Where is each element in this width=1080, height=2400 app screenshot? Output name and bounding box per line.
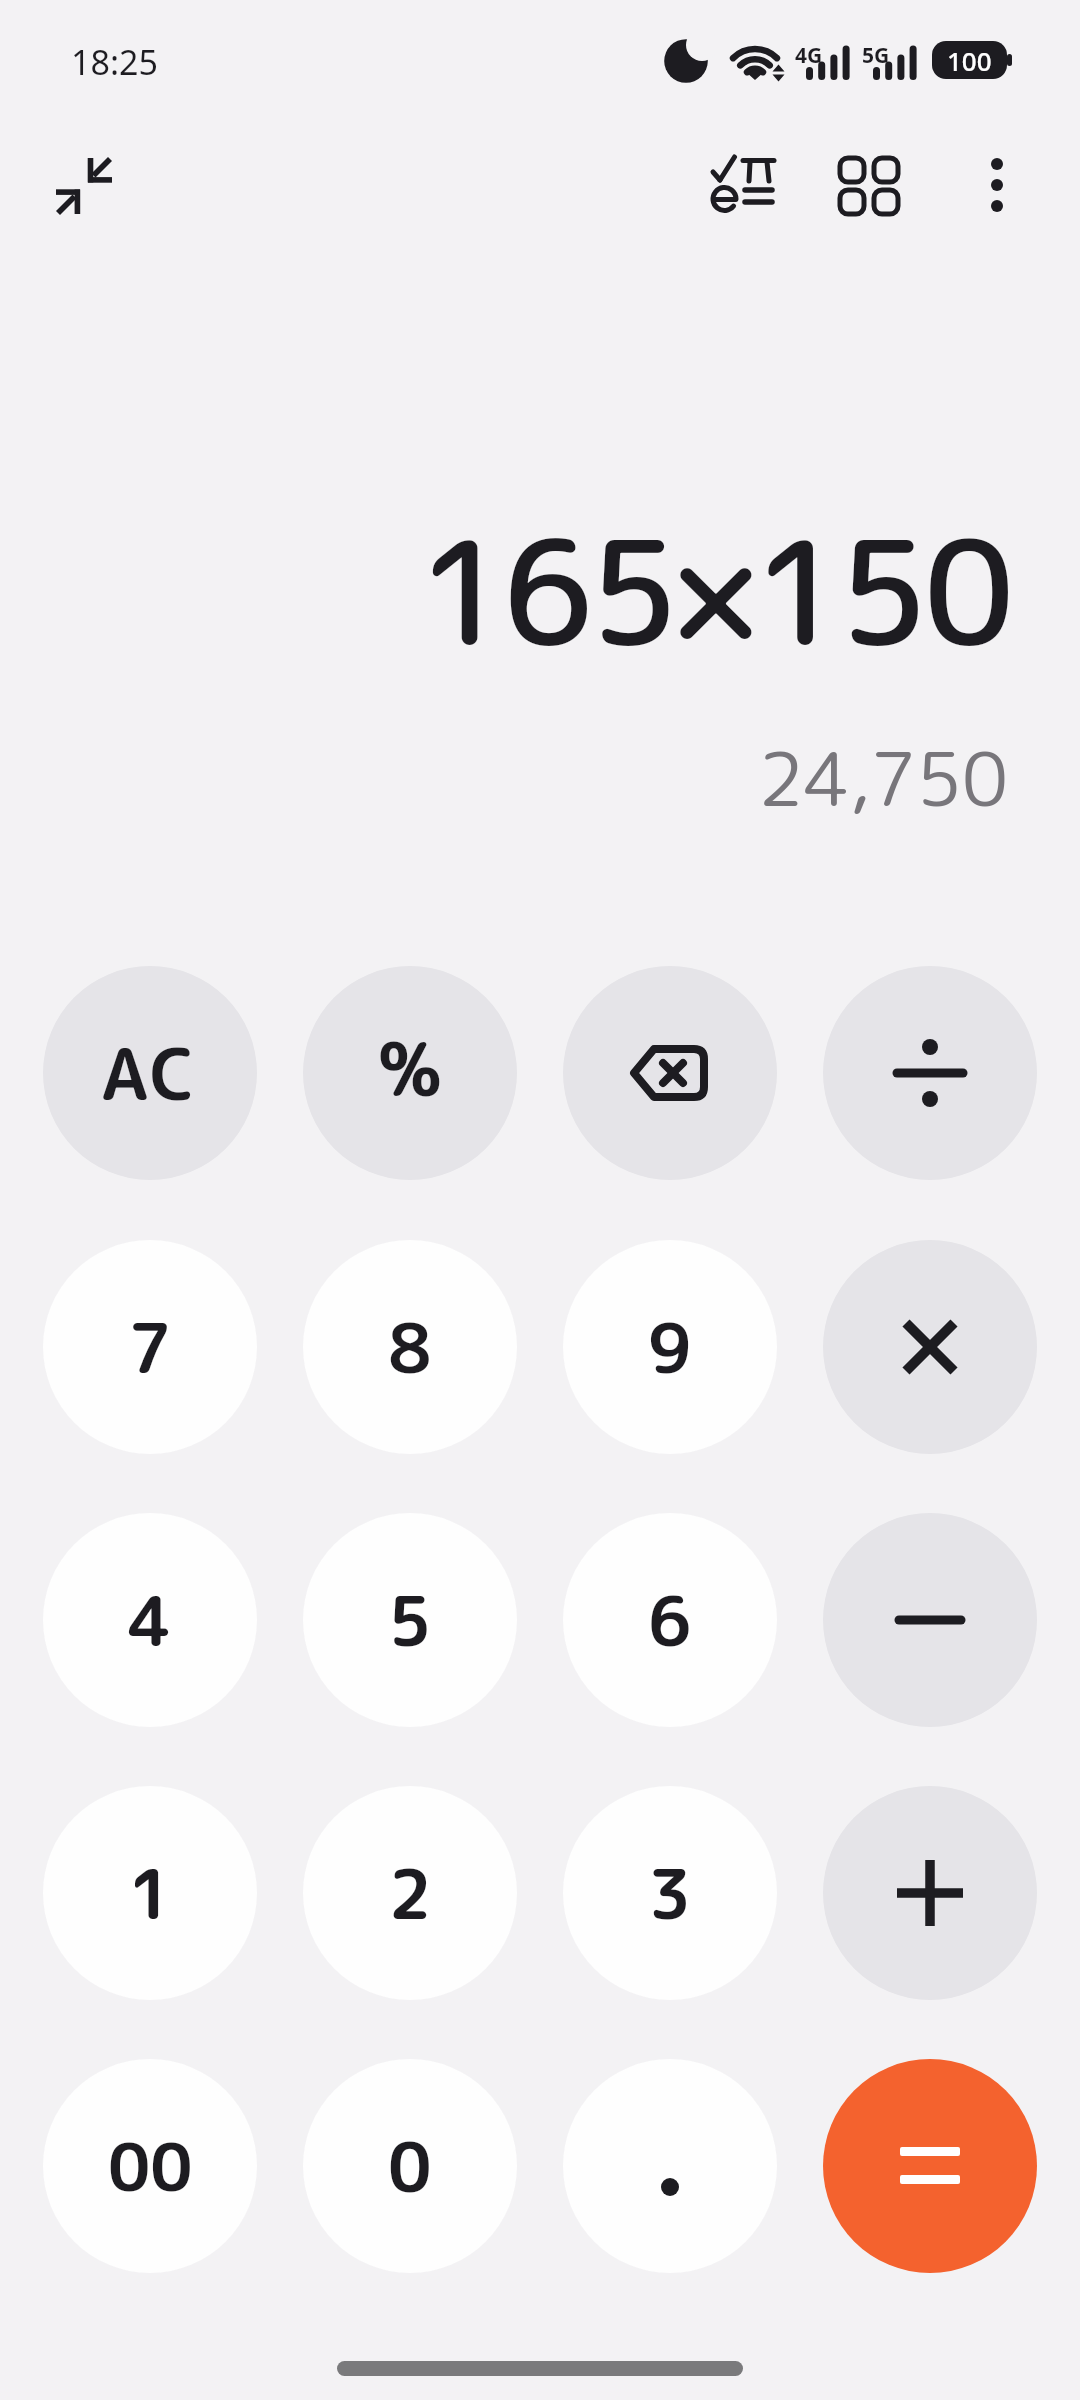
staticText: 18:25 bbox=[71, 39, 158, 85]
staticText: 165×150 bbox=[417, 490, 1010, 691]
button[interactable] bbox=[563, 2059, 777, 2273]
button[interactable] bbox=[705, 150, 783, 220]
button[interactable]: 9 bbox=[563, 1240, 777, 1454]
staticText: 9 bbox=[648, 1300, 692, 1395]
button[interactable]: 2 bbox=[303, 1786, 517, 2000]
staticText: 4 bbox=[128, 1573, 172, 1668]
button[interactable] bbox=[957, 145, 1037, 225]
button[interactable] bbox=[823, 2059, 1037, 2273]
button[interactable] bbox=[823, 1786, 1037, 2000]
staticText: 2 bbox=[388, 1846, 432, 1941]
staticText: 5G bbox=[862, 41, 890, 70]
button[interactable] bbox=[825, 142, 913, 230]
button[interactable] bbox=[563, 966, 777, 1180]
button[interactable]: 1 bbox=[43, 1786, 257, 2000]
button[interactable]: 00 bbox=[43, 2059, 257, 2273]
button[interactable]: % bbox=[303, 966, 517, 1180]
button[interactable]: 6 bbox=[563, 1513, 777, 1727]
staticText: % bbox=[378, 1018, 442, 1120]
button[interactable] bbox=[823, 1513, 1037, 1727]
button[interactable]: 3 bbox=[563, 1786, 777, 2000]
button[interactable] bbox=[823, 1240, 1037, 1454]
staticText: 00 bbox=[108, 2120, 193, 2212]
staticText: 6 bbox=[648, 1573, 692, 1668]
staticText: 24,750 bbox=[758, 726, 1008, 829]
button[interactable]: 5 bbox=[303, 1513, 517, 1727]
staticText: 5 bbox=[388, 1573, 432, 1668]
button[interactable]: 7 bbox=[43, 1240, 257, 1454]
staticText: 4G bbox=[795, 41, 823, 70]
button[interactable] bbox=[44, 146, 124, 226]
button[interactable]: 0 bbox=[303, 2059, 517, 2273]
button[interactable]: 8 bbox=[303, 1240, 517, 1454]
staticText: 3 bbox=[648, 1846, 692, 1941]
staticText: 0 bbox=[388, 2119, 432, 2214]
staticText: 8 bbox=[388, 1300, 432, 1395]
staticText: AC bbox=[101, 1023, 200, 1123]
button[interactable]: AC bbox=[43, 966, 257, 1180]
button[interactable]: 4 bbox=[43, 1513, 257, 1727]
button[interactable] bbox=[823, 966, 1037, 1180]
staticText: 100 bbox=[947, 43, 992, 78]
staticText: 1 bbox=[128, 1846, 172, 1941]
staticText: 7 bbox=[128, 1300, 172, 1395]
